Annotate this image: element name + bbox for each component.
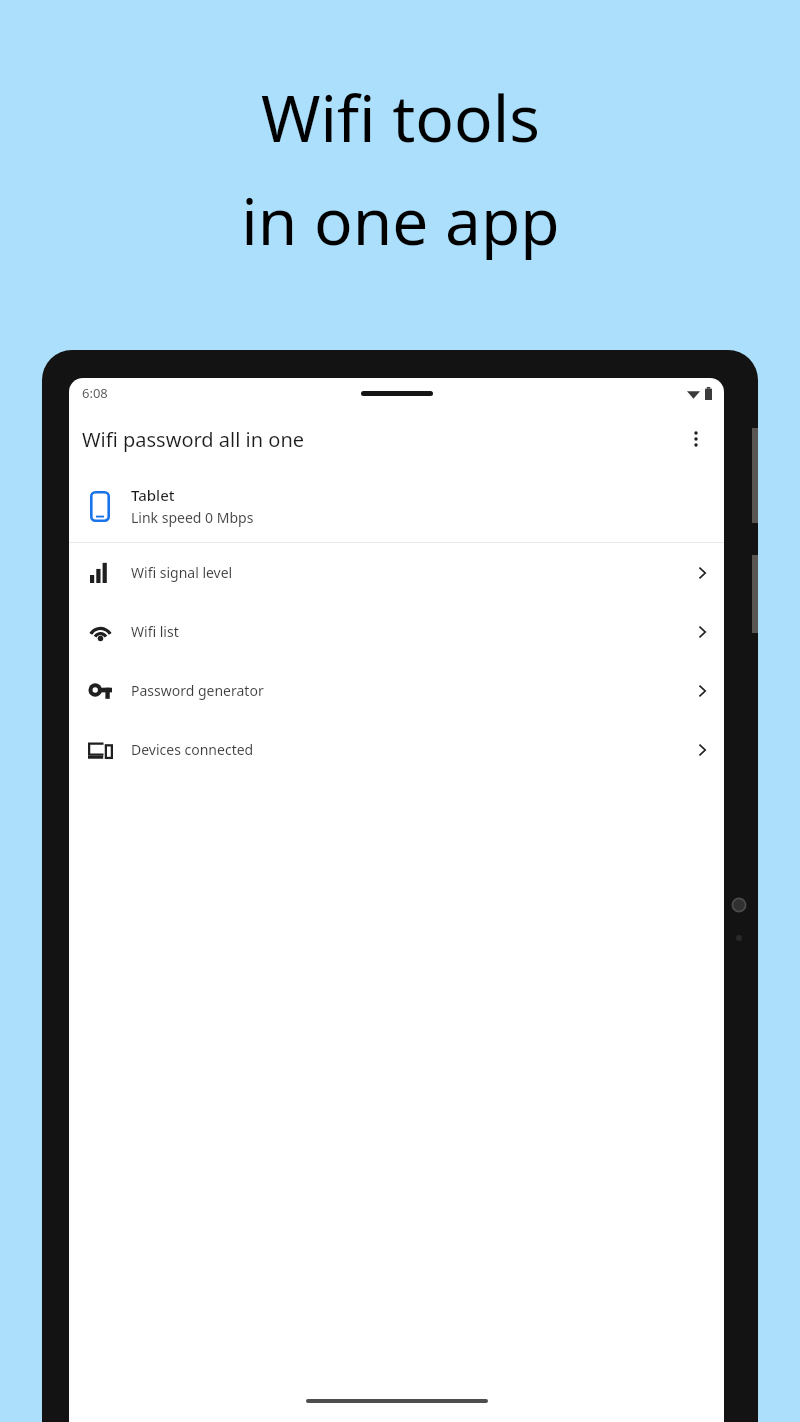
staticText: Devices connected (131, 740, 254, 759)
staticText: 6:08 (82, 384, 108, 402)
button[interactable]: More options (676, 419, 716, 459)
staticText: Wifi password all in one (82, 426, 305, 453)
staticText: in one app (241, 177, 560, 264)
staticText: Wifi list (131, 622, 179, 641)
staticText: Link speed 0 Mbps (131, 508, 254, 527)
staticText: Wifi signal level (131, 563, 233, 582)
button[interactable]: Password generator (69, 661, 724, 720)
button[interactable]: Wifi signal level (69, 543, 724, 602)
staticText: Password generator (131, 681, 264, 700)
button[interactable]: Devices connected (69, 720, 724, 779)
button[interactable]: Tablet (69, 470, 724, 542)
button[interactable]: Wifi password all in one (69, 408, 724, 470)
staticText: Tablet (131, 485, 175, 505)
staticText: Wifi tools (261, 74, 540, 161)
button[interactable]: Wifi list (69, 602, 724, 661)
